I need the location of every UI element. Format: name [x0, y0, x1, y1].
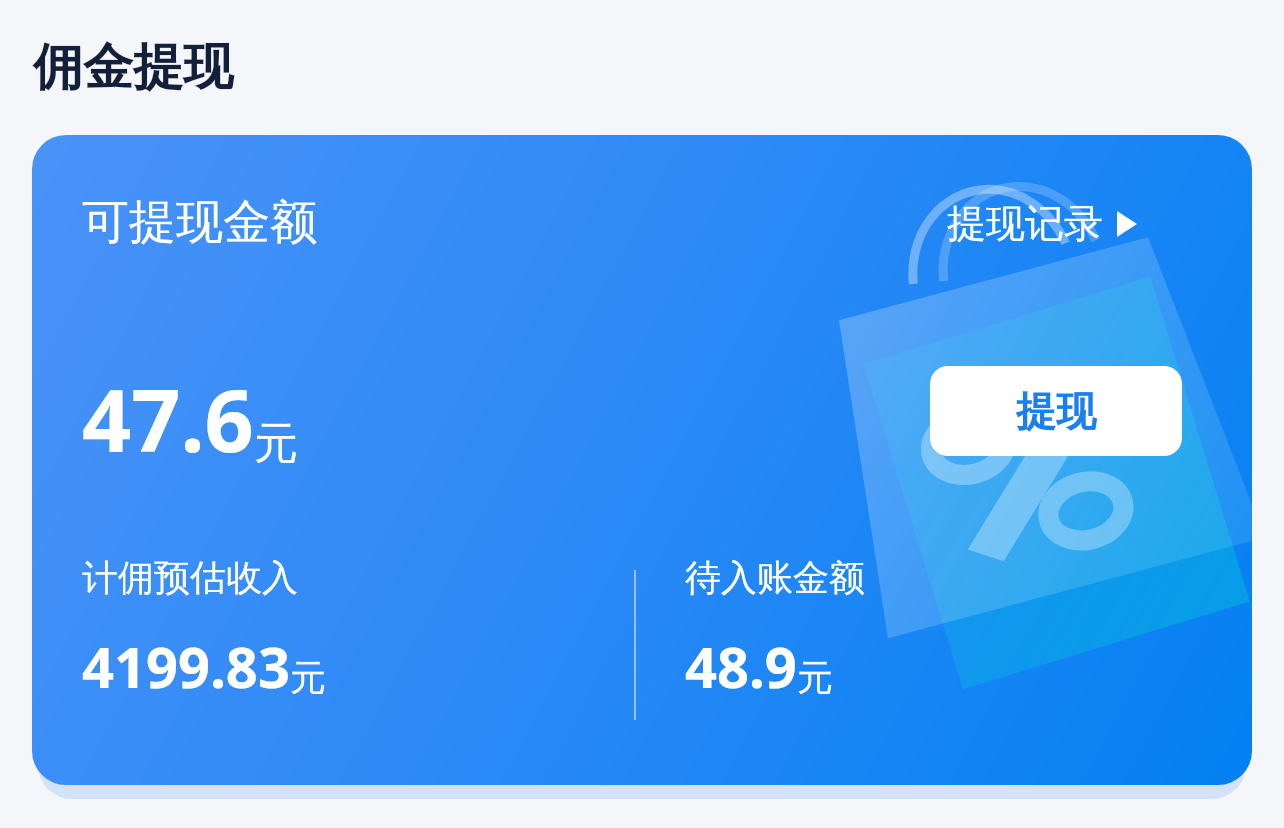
staticText: 47.6 — [82, 360, 254, 477]
staticText: 48.9 — [685, 628, 797, 704]
button[interactable]: 提现 — [930, 366, 1182, 456]
staticText: 元 — [290, 655, 326, 700]
staticText: 待入账金额 — [685, 555, 865, 600]
staticText: 可提现金额 — [82, 193, 317, 252]
button[interactable]: 提现记录 — [937, 193, 1147, 254]
staticText: 提现 — [1016, 386, 1096, 436]
button[interactable]: 可提现金额 — [82, 193, 317, 252]
staticText: 元 — [254, 416, 298, 471]
staticText: 元 — [797, 655, 833, 700]
staticText: 计佣预估收入 — [82, 555, 298, 600]
staticText: 提现记录 — [947, 199, 1103, 248]
staticText: 4199.83 — [82, 628, 290, 704]
staticText: 佣金提现 — [33, 36, 233, 99]
